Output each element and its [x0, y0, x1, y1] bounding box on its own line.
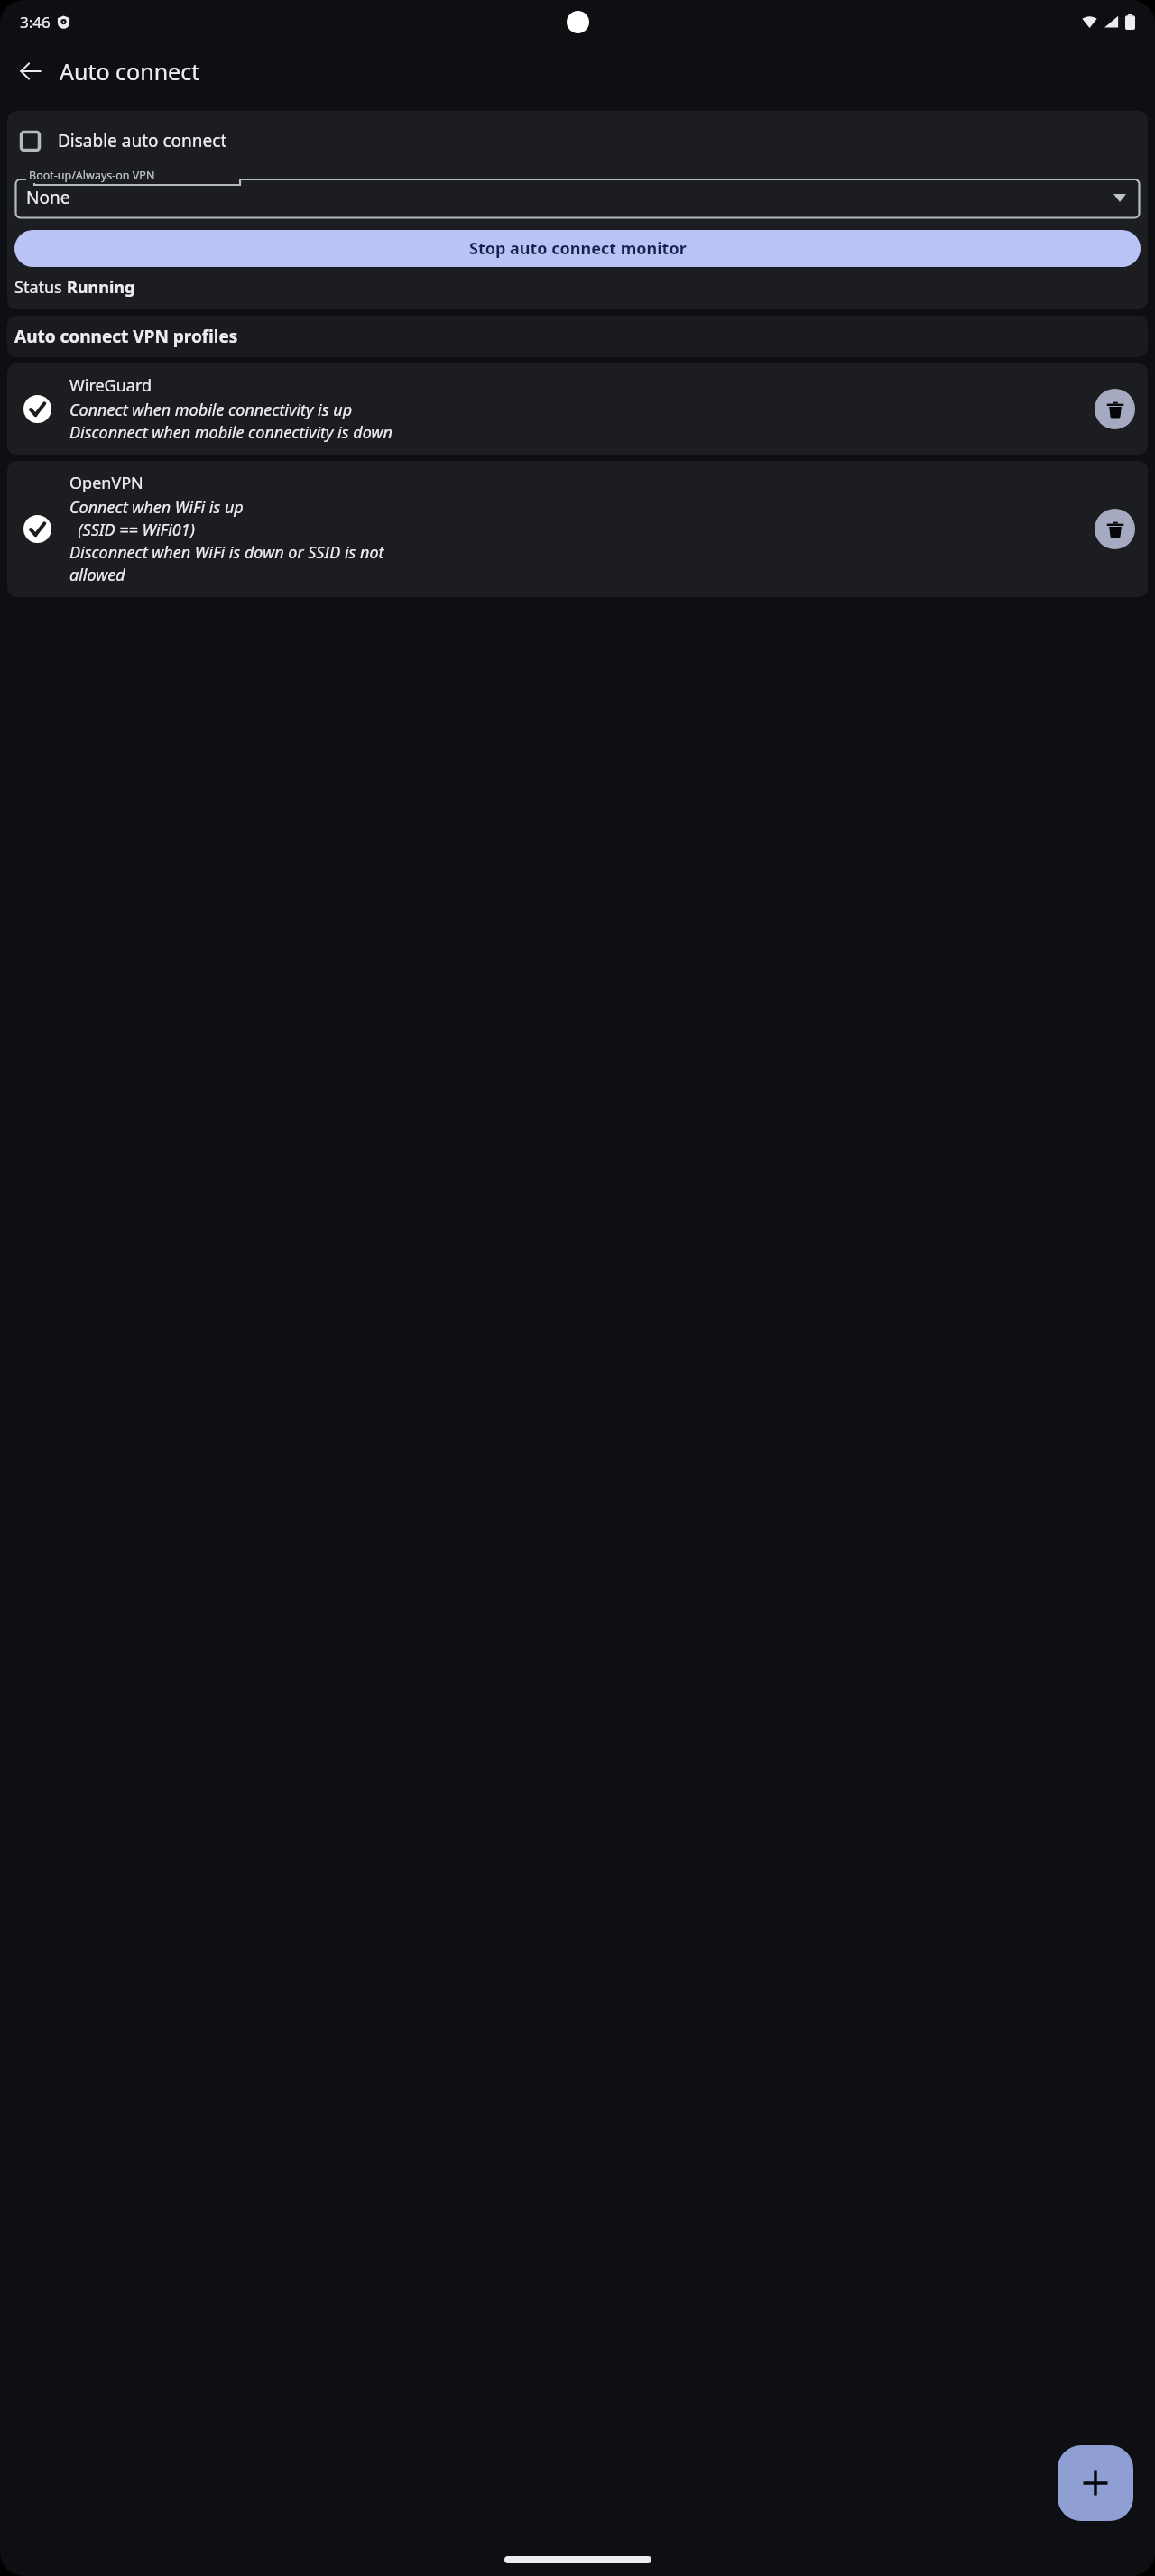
- staticText: Disconnect when WiFi is down or SSID is …: [69, 541, 384, 564]
- staticText: Auto connect: [60, 56, 200, 87]
- staticText: None: [26, 186, 70, 209]
- button[interactable]: Delete: [1095, 509, 1135, 549]
- staticText: WireGuard: [69, 374, 152, 397]
- staticText: Boot-up/Always-on VPN: [29, 168, 155, 183]
- staticText: (SSID == WiFi01): [69, 519, 195, 541]
- button[interactable]: Back: [9, 50, 52, 93]
- staticText: Connect when mobile connectivity is up: [69, 399, 353, 421]
- staticText: Status: [14, 276, 67, 299]
- staticText: Connect when WiFi is up: [69, 496, 244, 519]
- staticText: Running: [67, 276, 135, 299]
- button[interactable]: Delete: [1095, 389, 1135, 429]
- staticText: Auto connect VPN profiles: [14, 325, 238, 348]
- button[interactable]: OpenVPN: [7, 461, 1148, 597]
- staticText: OpenVPN: [69, 472, 143, 494]
- button[interactable]: Disable auto connect: [7, 124, 1148, 158]
- button[interactable]: Boot-up/Always-on VPN: [14, 172, 1141, 219]
- staticText: Stop auto connect monitor: [469, 237, 687, 260]
- staticText: Disable auto connect: [58, 129, 227, 152]
- staticText: 3:46: [20, 12, 51, 32]
- button[interactable]: WireGuard: [7, 363, 1148, 455]
- button[interactable]: Stop auto connect monitor: [14, 230, 1141, 267]
- button[interactable]: Add profile: [1058, 2445, 1133, 2521]
- staticText: Disconnect when mobile connectivity is d…: [69, 421, 393, 444]
- staticText: allowed: [69, 564, 125, 586]
